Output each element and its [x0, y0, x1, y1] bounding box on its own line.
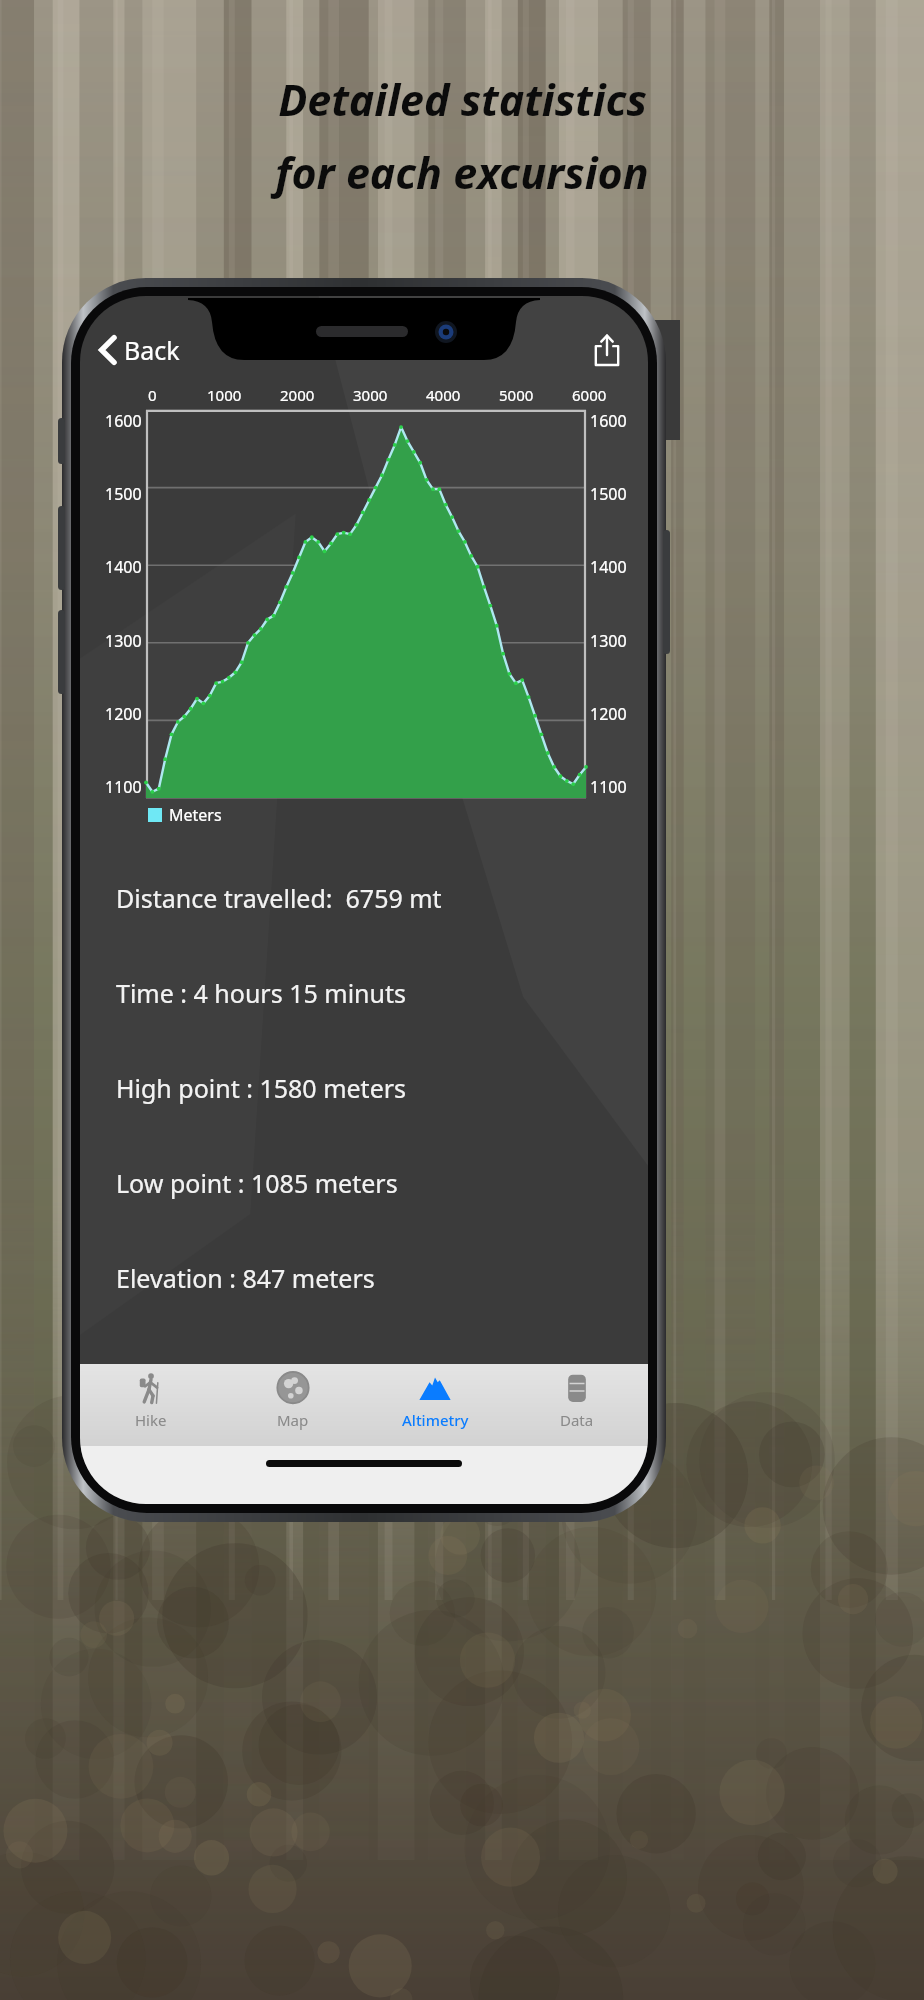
button[interactable]: Back: [94, 329, 186, 371]
staticText: 1200: [105, 703, 142, 725]
staticText: 1500: [105, 483, 142, 505]
staticText: Low point : 1085 meters: [116, 1166, 398, 1200]
button[interactable]: High point : 1580 meters: [80, 1040, 648, 1135]
staticText: Altimetry: [402, 1410, 469, 1430]
staticText: 1600: [590, 410, 627, 432]
staticText: 1100: [105, 776, 142, 798]
staticText: 0: [148, 385, 157, 405]
staticText: 4000: [426, 385, 461, 405]
staticText: 1100: [590, 776, 627, 798]
staticText: 1000: [207, 385, 242, 405]
staticText: Meters: [169, 804, 222, 826]
button[interactable]: Time : 4 hours 15 minuts: [80, 945, 648, 1040]
staticText: Hike: [135, 1410, 167, 1430]
staticText: 5000: [499, 385, 534, 405]
button[interactable]: Map: [222, 1364, 364, 1446]
button[interactable]: Share: [584, 327, 630, 373]
staticText: High point : 1580 meters: [116, 1071, 407, 1105]
staticText: Elevation : 847 meters: [116, 1261, 375, 1295]
staticText: Time : 4 hours 15 minuts: [116, 976, 406, 1010]
button[interactable]: Hike: [80, 1364, 222, 1446]
button[interactable]: Altimetry: [364, 1364, 506, 1446]
button[interactable]: Distance travelled: 6759 mt: [80, 850, 648, 945]
button[interactable]: Elevation : 847 meters: [80, 1230, 648, 1325]
staticText: 1400: [590, 556, 627, 578]
staticText: 1200: [590, 703, 627, 725]
staticText: 3000: [353, 385, 388, 405]
staticText: 1300: [105, 630, 142, 652]
staticText: Data: [560, 1410, 594, 1430]
staticText: Map: [277, 1410, 309, 1430]
staticText: 2000: [280, 385, 315, 405]
staticText: 1300: [590, 630, 627, 652]
button[interactable]: Low point : 1085 meters: [80, 1135, 648, 1230]
staticText: 6000: [572, 385, 607, 405]
staticText: Back: [124, 333, 180, 367]
staticText: 1500: [590, 483, 627, 505]
staticText: 1400: [105, 556, 142, 578]
staticText: Distance travelled: 6759 mt: [116, 881, 442, 915]
staticText: for each excursion: [275, 143, 649, 202]
staticText: Detailed statistics: [278, 70, 647, 129]
staticText: 1600: [105, 410, 142, 432]
button[interactable]: Data: [506, 1364, 648, 1446]
